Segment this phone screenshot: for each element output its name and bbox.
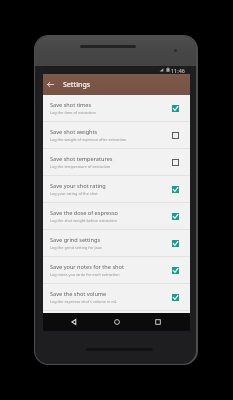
staticText: Settings [63, 80, 91, 90]
staticText: Log your rating of the shot [50, 191, 98, 196]
staticText: Save the dose of espresso [50, 209, 118, 217]
button[interactable]: Back [68, 316, 80, 328]
staticText: Save shot temperatures [50, 155, 113, 163]
staticText: Save the shot volume [50, 290, 107, 298]
staticText: Log the grind setting for Java [50, 245, 102, 250]
staticText: Log the time of extraction [50, 110, 96, 115]
button[interactable]: Toggle setting [170, 157, 181, 168]
button[interactable]: Save the shot volume [43, 284, 190, 311]
button[interactable]: Toggle setting [170, 238, 181, 249]
staticText: Log the temperature of extraction [50, 164, 111, 169]
button[interactable]: Save the dose of espresso [43, 203, 190, 230]
staticText: Log the weight of espresso after extract… [50, 137, 127, 142]
button[interactable]: Toggle setting [170, 130, 181, 141]
button[interactable]: Toggle setting [170, 292, 181, 303]
staticText: Save your notes for the shot [50, 263, 124, 271]
button[interactable]: Home [111, 316, 123, 328]
staticText: Save your shot rating [50, 182, 106, 190]
button[interactable]: Save your notes for the shot [43, 257, 190, 284]
button[interactable]: Save grind settings [43, 230, 190, 257]
button[interactable]: Recent apps [152, 316, 164, 328]
staticText: Save shot times [50, 101, 92, 109]
button[interactable]: Toggle setting [170, 103, 181, 114]
staticText: 11:46 [171, 67, 185, 74]
staticText: Log notes you write for each extraction [50, 272, 120, 277]
button[interactable]: Save shot times [43, 95, 190, 122]
button[interactable]: Save shot temperatures [43, 149, 190, 176]
staticText: Log the shot weight before extraction [50, 218, 118, 223]
staticText: Save grind settings [50, 236, 101, 244]
button[interactable]: Save shot weights [43, 122, 190, 149]
button[interactable]: Navigate up [45, 79, 56, 90]
button[interactable]: Toggle setting [170, 265, 181, 276]
button[interactable]: Save your shot rating [43, 176, 190, 203]
button[interactable]: Toggle setting [170, 211, 181, 222]
staticText: Save shot weights [50, 128, 98, 136]
staticText: Log the espresso shot's volume in mL [50, 299, 117, 304]
button[interactable]: Toggle setting [170, 184, 181, 195]
